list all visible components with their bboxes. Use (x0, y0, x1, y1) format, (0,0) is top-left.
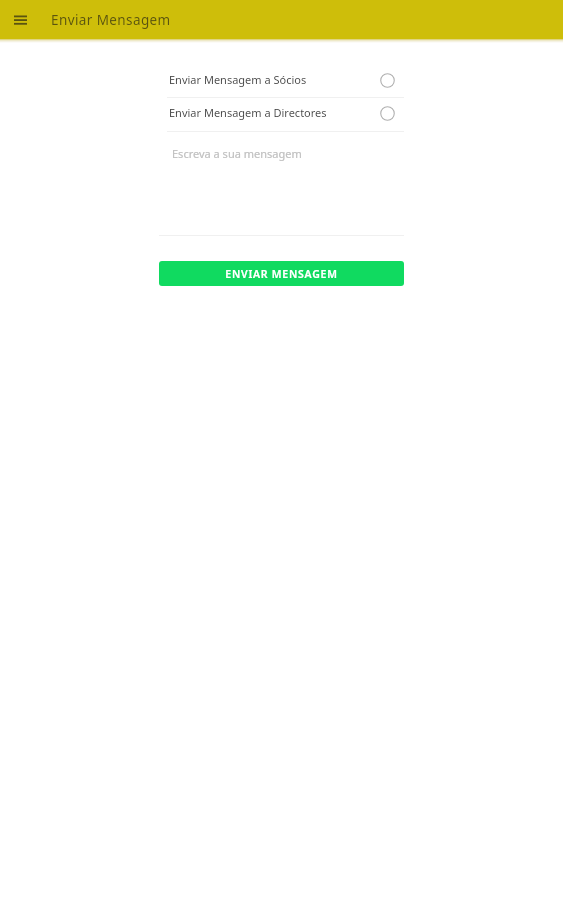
button[interactable]: Enviar Mensagem a Sócios (159, 63, 404, 97)
staticText: Enviar Mensagem a Directores (169, 105, 327, 120)
button[interactable]: ENVIAR MENSAGEM (159, 261, 404, 286)
staticText: Enviar Mensagem a Sócios (169, 72, 307, 87)
staticText: Enviar Mensagem (51, 11, 171, 29)
staticText: ENVIAR MENSAGEM (225, 267, 338, 281)
button[interactable]: Menu (8, 8, 32, 32)
staticText: Escreva a sua mensagem (172, 146, 302, 161)
button[interactable]: Enviar Mensagem a Directores (159, 98, 404, 131)
